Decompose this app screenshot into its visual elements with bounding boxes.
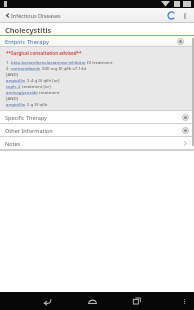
- staticText: ampicillin: [6, 101, 26, 107]
- staticText: 1.: [6, 59, 11, 65]
- staticText: [AND]: [6, 95, 18, 101]
- button[interactable]: Infectious Diseases: [3, 11, 63, 20]
- button[interactable]: Notes: [0, 137, 194, 150]
- staticText: treatment [or]: [21, 83, 51, 89]
- staticText: Notes: [5, 140, 21, 147]
- staticText: ceph. 2: [6, 83, 21, 89]
- staticText: Specific Therapy: [5, 114, 47, 121]
- staticText: ampicillin: [6, 77, 26, 83]
- staticText: Cholecystitis: [5, 25, 52, 35]
- staticText: Infectious Diseases: [11, 12, 61, 19]
- button[interactable]: Refresh: [165, 9, 178, 22]
- button[interactable]: Other Information: [0, 124, 194, 137]
- staticText: aminoglycoside: [6, 89, 38, 95]
- staticText: 2 g IV q6h: [26, 101, 48, 107]
- staticText: IV treatment: [86, 59, 113, 65]
- staticText: 500 mg IV q8h x7-14d: [41, 65, 87, 71]
- button[interactable]: Back: [39, 293, 55, 309]
- staticText: 2-4 g IV q6h [or]: [26, 77, 60, 83]
- staticText: treatment: [38, 89, 60, 95]
- staticText: **Surgical consultation advised**: [6, 50, 82, 56]
- staticText: beta-lactam/beta-lactamase inhibitor: [11, 59, 86, 65]
- button[interactable]: Empiric Therapy: [0, 36, 194, 47]
- button[interactable]: Recents: [129, 293, 145, 309]
- staticText: [AND]: [6, 71, 18, 77]
- button[interactable]: Menu: [177, 294, 191, 308]
- staticText: metronidazole: [11, 65, 41, 71]
- staticText: Other Information: [5, 127, 53, 134]
- button[interactable]: Specific Therapy: [0, 111, 194, 124]
- button[interactable]: More options: [178, 9, 191, 22]
- staticText: 2.: [6, 65, 11, 71]
- button[interactable]: Home: [84, 293, 100, 309]
- staticText: Empiric Therapy: [5, 38, 49, 46]
